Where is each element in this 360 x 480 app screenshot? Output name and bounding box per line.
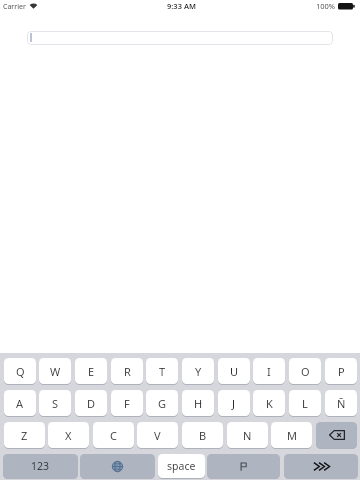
staticText: L — [302, 396, 308, 411]
staticText: Q — [16, 364, 25, 379]
staticText: X — [65, 428, 72, 443]
button[interactable]: F — [111, 390, 143, 416]
button[interactable] — [207, 454, 280, 478]
button[interactable]: S — [39, 390, 71, 416]
button[interactable]: G — [146, 390, 178, 416]
staticText: K — [266, 396, 273, 411]
button[interactable]: V — [137, 422, 178, 448]
button[interactable]: L — [289, 390, 321, 416]
button[interactable]: T — [146, 358, 178, 384]
button[interactable]: Q — [4, 358, 36, 384]
staticText: Z — [21, 428, 28, 443]
staticText: U — [230, 364, 239, 379]
button[interactable]: E — [75, 358, 107, 384]
button[interactable]: H — [182, 390, 214, 416]
button[interactable]: space — [158, 454, 205, 478]
staticText: A — [16, 396, 24, 411]
button[interactable]: N — [227, 422, 268, 448]
staticText: P — [338, 364, 345, 379]
staticText: Carrier — [3, 2, 26, 12]
staticText: Ñ — [337, 396, 346, 411]
button[interactable]: U — [218, 358, 250, 384]
staticText: 123 — [31, 459, 50, 473]
button[interactable]: P — [325, 358, 357, 384]
button[interactable]: K — [253, 390, 285, 416]
button[interactable]: D — [75, 390, 107, 416]
button[interactable]: Z — [4, 422, 45, 448]
staticText: 100% — [316, 1, 336, 11]
button[interactable]: O — [289, 358, 321, 384]
staticText: W — [50, 364, 61, 379]
staticText: J — [232, 396, 236, 411]
button[interactable]: 123 — [3, 454, 78, 478]
staticText: N — [243, 428, 252, 443]
staticText: Y — [195, 364, 202, 379]
staticText: H — [194, 396, 203, 411]
staticText: F — [124, 396, 130, 411]
staticText: M — [287, 428, 297, 443]
button[interactable] — [27, 31, 333, 45]
staticText: T — [159, 364, 166, 379]
button[interactable]: R — [111, 358, 143, 384]
button[interactable]: Ñ — [325, 390, 357, 416]
button[interactable]: B — [182, 422, 223, 448]
button[interactable]: I — [253, 358, 285, 384]
button[interactable]: C — [93, 422, 134, 448]
staticText: D — [87, 396, 96, 411]
button[interactable]: W — [39, 358, 71, 384]
staticText: R — [124, 364, 131, 379]
button[interactable]: Y — [182, 358, 214, 384]
staticText: G — [158, 396, 167, 411]
staticText: I — [267, 364, 271, 379]
staticText: space — [167, 459, 196, 473]
staticText: B — [199, 428, 207, 443]
button[interactable]: M — [271, 422, 312, 448]
button[interactable]: A — [4, 390, 36, 416]
button[interactable]: X — [48, 422, 89, 448]
button[interactable] — [80, 454, 155, 478]
staticText: O — [301, 364, 310, 379]
button[interactable] — [316, 422, 357, 448]
staticText: S — [52, 396, 59, 411]
button[interactable] — [284, 454, 358, 478]
staticText: 9:33 AM — [167, 1, 196, 11]
staticText: C — [110, 428, 117, 443]
button[interactable]: J — [218, 390, 250, 416]
staticText: V — [154, 428, 161, 443]
staticText: E — [88, 364, 95, 379]
